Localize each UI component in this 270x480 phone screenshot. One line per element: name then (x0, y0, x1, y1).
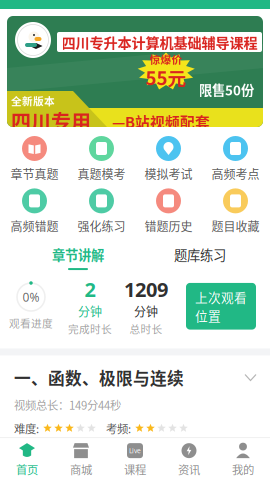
staticText: 高频错题 (10, 217, 58, 235)
staticText: 55元 (145, 64, 186, 91)
staticText: 分钟 (134, 303, 158, 320)
staticText: 高频考点 (211, 165, 259, 182)
button[interactable]: Live (108, 443, 162, 477)
staticText: 观看进度 (9, 315, 53, 330)
button[interactable]: 章节讲解 (17, 245, 139, 270)
button[interactable]: 我的 (216, 443, 270, 477)
button[interactable]: 题库练习 (139, 245, 261, 270)
staticText: 错题历史 (144, 217, 192, 235)
button[interactable]: 错题历史 (135, 188, 202, 235)
staticText: 章节真题 (10, 165, 58, 182)
staticText: 首页 (16, 461, 38, 477)
button[interactable]: 资讯 (162, 443, 216, 477)
staticText: 四川专升本计算机基础辅导课程 (61, 32, 257, 52)
staticText: 考频: (106, 420, 131, 436)
staticText: 2 (84, 276, 95, 303)
staticText: 章节讲解 (52, 245, 104, 264)
button[interactable]: 高频错题 (1, 188, 68, 235)
staticText: 强化练习 (77, 217, 125, 235)
staticText: 资讯 (178, 461, 200, 477)
button[interactable]: 题目收藏 (202, 188, 269, 235)
button[interactable]: 商城 (54, 443, 108, 477)
staticText: 分钟 (78, 303, 102, 320)
staticText: 模拟考试 (144, 165, 192, 182)
button[interactable]: 章节真题 (1, 136, 68, 182)
button[interactable]: 真题模考 (68, 136, 135, 182)
staticText: 1209 (124, 276, 168, 303)
staticText: 难度: (14, 420, 39, 436)
staticText: 题库练习 (174, 245, 226, 264)
button[interactable]: 模拟考试 (135, 136, 202, 182)
staticText: Live (129, 446, 141, 455)
staticText: 上次观看位置 (195, 288, 247, 325)
staticText: 0% (22, 289, 39, 305)
button[interactable]: 强化练习 (68, 188, 135, 235)
staticText: 题目收藏 (211, 217, 259, 235)
staticText: 二、一元函数微分学 (14, 457, 167, 480)
staticText: 惊爆价 (149, 51, 182, 67)
staticText: 我的 (232, 461, 254, 477)
button[interactable]: 首页 (0, 443, 54, 477)
button[interactable]: 一、函数、极限与连续 (0, 355, 270, 446)
staticText: 一、函数、极限与连续 (14, 365, 184, 389)
staticText: 限售50份 (199, 80, 254, 99)
button[interactable]: 上次观看位置 (186, 283, 256, 330)
staticText: 四川专用 (11, 106, 91, 135)
staticText: —B站视频配套 (112, 111, 210, 132)
button[interactable]: 二、一元函数微分学 (0, 447, 270, 480)
staticText: 视频总长：149分44秒 (14, 397, 121, 413)
staticText: 课程 (124, 461, 146, 477)
staticText: 完成时长 (68, 321, 112, 336)
button[interactable]: 高频考点 (202, 136, 269, 182)
staticText: 真题模考 (77, 165, 125, 182)
staticText: 总时长 (129, 321, 162, 336)
staticText: 商城 (70, 461, 92, 477)
staticText: 全新版本 (11, 93, 55, 108)
